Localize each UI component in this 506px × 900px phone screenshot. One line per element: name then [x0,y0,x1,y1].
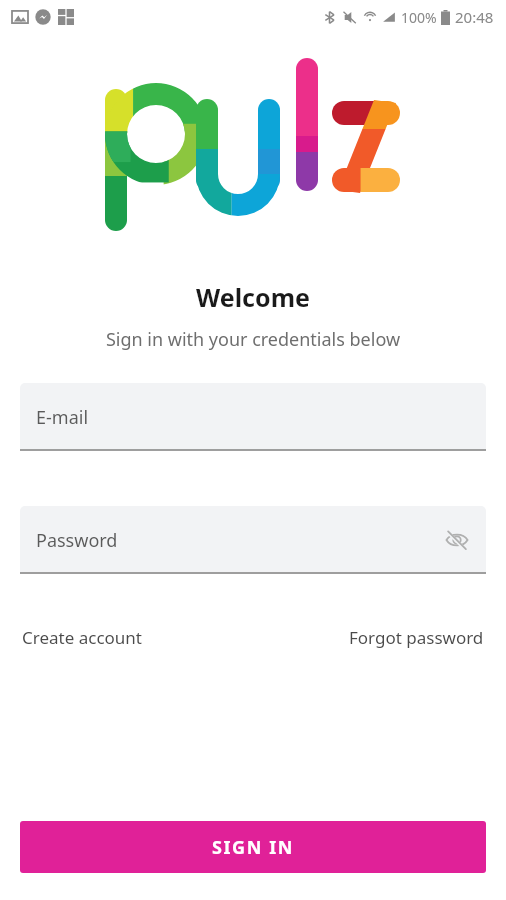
staticText: Welcome [0,280,506,314]
staticText: SIGN IN [212,835,295,860]
button[interactable]: Create account [20,620,144,655]
button[interactable]: E-mail [20,383,486,451]
button[interactable]: Forgot password [347,620,486,655]
staticText: E-mail [36,405,89,430]
staticText: Create account [22,626,142,649]
button[interactable]: Password [20,506,486,574]
staticText: Sign in with your credentials below [0,327,506,352]
staticText: 100% [401,8,437,27]
button[interactable]: Show password [440,523,474,557]
staticText: Forgot password [349,626,484,649]
button[interactable]: SIGN IN [20,821,486,873]
staticText: 20:48 [455,7,494,27]
staticText: Password [36,528,118,553]
